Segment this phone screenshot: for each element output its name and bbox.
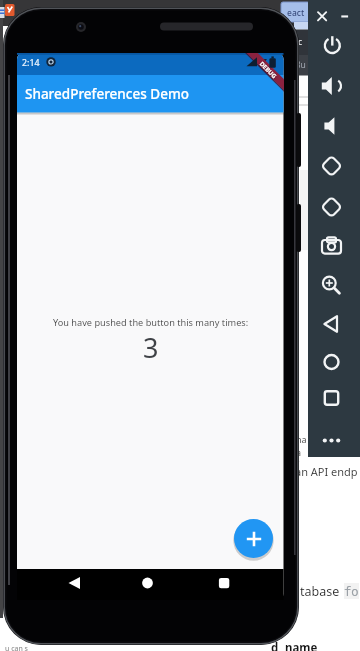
- button[interactable]: [316, 72, 348, 100]
- button[interactable]: [316, 310, 348, 338]
- button[interactable]: [316, 193, 348, 221]
- button[interactable]: [234, 519, 273, 558]
- staticText: atabase: [293, 583, 340, 600]
- staticText: fo: [344, 583, 359, 599]
- staticText: d: [271, 640, 279, 651]
- button[interactable]: [316, 232, 348, 260]
- staticText: u can s: [5, 644, 28, 651]
- staticText: You have pushed the button this many tim…: [53, 316, 249, 329]
- button[interactable]: [316, 112, 348, 140]
- button[interactable]: [313, 7, 331, 25]
- button[interactable]: [316, 348, 348, 376]
- staticText: na: [296, 433, 307, 445]
- button[interactable]: [337, 7, 355, 25]
- button[interactable]: [134, 570, 162, 597]
- staticText: eact: [287, 7, 305, 19]
- button[interactable]: [60, 570, 88, 597]
- staticText: /: [296, 458, 300, 470]
- staticText: 3: [143, 329, 159, 366]
- button[interactable]: [316, 31, 348, 59]
- button[interactable]: [316, 272, 348, 300]
- button[interactable]: [316, 152, 348, 180]
- staticText: DEBUG: [258, 60, 278, 80]
- staticText: SharedPreferences Demo: [25, 85, 189, 103]
- button[interactable]: [316, 426, 348, 454]
- staticText: a: [296, 446, 302, 458]
- staticText: Ic: [295, 36, 302, 48]
- button[interactable]: [316, 384, 348, 412]
- staticText: Bu: [295, 59, 306, 71]
- staticText: an API endp: [295, 464, 358, 479]
- staticText: name: [285, 640, 318, 651]
- staticText: 2:14: [22, 57, 40, 69]
- button[interactable]: [210, 570, 238, 597]
